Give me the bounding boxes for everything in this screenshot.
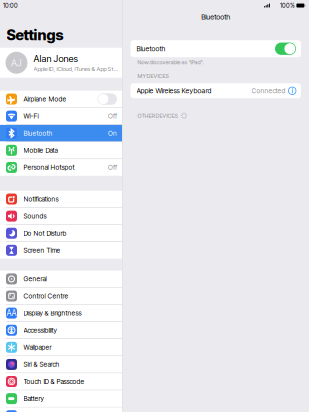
staticText: Alan Jones bbox=[33, 53, 77, 64]
staticText: Siri & Search bbox=[23, 360, 59, 368]
staticText: Mobile Data bbox=[23, 146, 57, 154]
staticText: Wi-Fi bbox=[23, 112, 38, 120]
staticText: Off bbox=[108, 163, 117, 171]
staticText: General bbox=[23, 275, 46, 283]
staticText: Bluetooth bbox=[23, 129, 52, 137]
staticText: Apple Wireless Keyboard bbox=[136, 87, 211, 95]
staticText: Settings bbox=[6, 26, 63, 44]
button[interactable]: Battery bbox=[0, 390, 122, 407]
button[interactable]: AJ bbox=[0, 48, 122, 78]
staticText: Airplane Mode bbox=[23, 95, 66, 103]
staticText: 100% bbox=[280, 2, 295, 9]
staticText: Bluetooth bbox=[201, 12, 230, 21]
staticText: Touch ID & Passcode bbox=[23, 377, 84, 386]
staticText: AA bbox=[6, 308, 16, 318]
button[interactable]: Personal Hotspot bbox=[0, 159, 122, 176]
button[interactable]: Airplane Mode bbox=[0, 91, 122, 107]
staticText: Bluetooth bbox=[136, 44, 165, 53]
staticText: Off bbox=[108, 112, 117, 120]
button[interactable]: Touch ID & Passcode bbox=[0, 373, 122, 390]
staticText: Display & Brightness bbox=[23, 309, 81, 317]
staticText: Wallpaper bbox=[23, 343, 51, 351]
button[interactable]: Wi-Fi bbox=[0, 108, 122, 124]
staticText: AJ bbox=[11, 57, 22, 68]
button[interactable]: Siri & Search bbox=[0, 356, 122, 373]
staticText: i bbox=[292, 87, 293, 95]
button[interactable]: Sounds bbox=[0, 208, 122, 224]
staticText: Do Not Disturb bbox=[23, 229, 66, 237]
staticText: Personal Hotspot bbox=[23, 163, 74, 171]
button[interactable]: Do Not Disturb bbox=[0, 225, 122, 241]
button[interactable]: AA bbox=[0, 305, 122, 321]
staticText: Apple ID, iCloud, iTunes & App St… bbox=[33, 65, 118, 72]
staticText: Screen Time bbox=[23, 246, 60, 254]
staticText: MY DEVICES bbox=[137, 72, 168, 79]
staticText: Notifications bbox=[23, 195, 58, 203]
staticText: On bbox=[108, 129, 117, 137]
button[interactable]: Control Centre bbox=[0, 288, 122, 304]
button[interactable]: Notifications bbox=[0, 191, 122, 207]
staticText: Sounds bbox=[23, 212, 46, 220]
staticText: Control Centre bbox=[23, 292, 68, 300]
button[interactable]: Privacy bbox=[0, 407, 122, 412]
staticText: 10:00 bbox=[3, 2, 18, 9]
button[interactable]: Bluetooth bbox=[0, 125, 122, 141]
staticText: Accessibility bbox=[23, 326, 56, 334]
button[interactable]: Screen Time bbox=[0, 242, 122, 259]
staticText: Connected bbox=[251, 87, 285, 95]
button[interactable]: Accessibility bbox=[0, 322, 122, 338]
button[interactable]: General bbox=[0, 271, 122, 287]
button[interactable]: Wallpaper bbox=[0, 339, 122, 356]
button[interactable]: Mobile Data bbox=[0, 142, 122, 159]
staticText: Battery bbox=[23, 395, 43, 403]
button[interactable]: Apple Wireless Keyboard bbox=[122, 83, 309, 98]
staticText: Now discoverable as “iPad”. bbox=[137, 59, 203, 65]
staticText: OTHER DEVICES bbox=[137, 112, 177, 119]
